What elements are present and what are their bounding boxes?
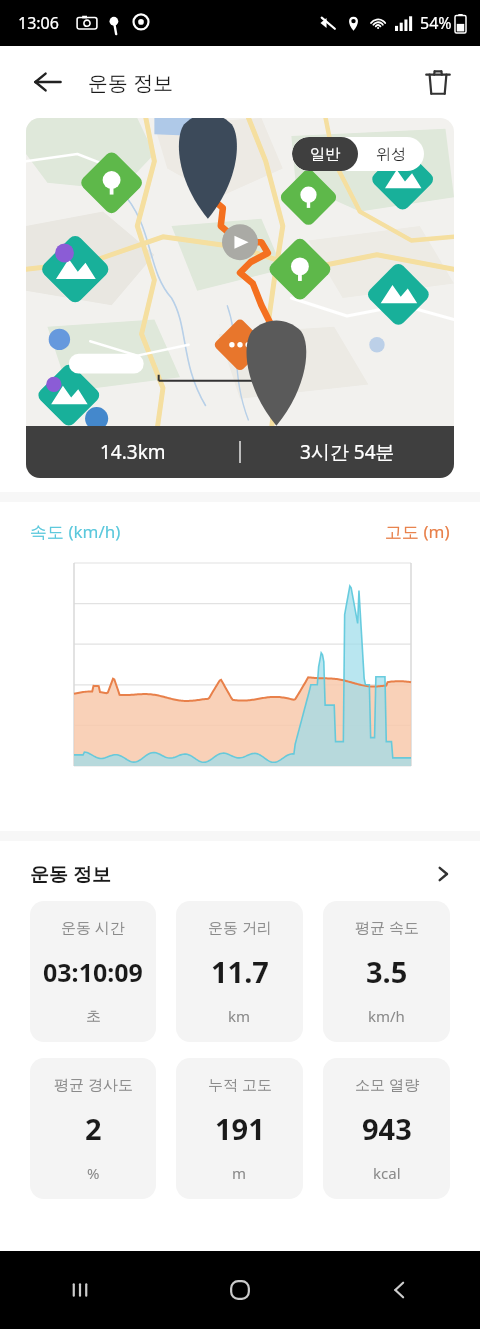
button[interactable]: 일반 xyxy=(26,118,454,478)
staticText: 소모 열량 xyxy=(355,1074,419,1094)
staticText: 일반 xyxy=(310,145,340,164)
staticText: 2 xyxy=(85,1109,102,1148)
button[interactable]: 위성 xyxy=(358,137,424,171)
button[interactable]: 소모 열량 xyxy=(323,1058,450,1199)
button[interactable]: Back xyxy=(320,1251,480,1329)
button[interactable]: 운동 거리 xyxy=(176,901,303,1042)
staticText: km xyxy=(228,1006,251,1026)
staticText: 03:10:09 xyxy=(43,955,143,989)
button[interactable]: 누적 고도 xyxy=(176,1058,303,1199)
button[interactable]: 운동 시간 xyxy=(30,901,156,1042)
staticText: 평균 속도 xyxy=(355,917,419,937)
staticText: m xyxy=(232,1163,247,1183)
staticText: 3.5 xyxy=(366,952,408,991)
button[interactable]: 운동 정보 xyxy=(0,841,480,901)
button[interactable]: 평균 속도 xyxy=(323,901,450,1042)
staticText: 위성 xyxy=(376,145,406,164)
staticText: 54% xyxy=(420,12,452,34)
staticText: kcal xyxy=(373,1163,401,1183)
button[interactable]: 평균 경사도 xyxy=(30,1058,156,1199)
staticText: 13:06 xyxy=(18,12,59,34)
button[interactable]: Recents xyxy=(0,1251,160,1329)
staticText: 운동 거리 xyxy=(208,917,272,937)
staticText: % xyxy=(87,1163,100,1183)
staticText: 평균 경사도 xyxy=(54,1074,133,1094)
staticText: km/h xyxy=(368,1006,405,1026)
staticText: 고도 (m) xyxy=(385,520,450,543)
other: More xyxy=(432,863,454,885)
staticText: 운동 정보 xyxy=(30,861,111,887)
staticText: 운동 시간 xyxy=(61,917,125,937)
staticText: 누적 고도 xyxy=(208,1074,272,1094)
button[interactable]: Back xyxy=(24,58,72,106)
staticText: 11.7 xyxy=(211,952,269,991)
button[interactable]: Delete xyxy=(414,58,462,106)
staticText: 운동 정보 xyxy=(88,69,174,96)
button[interactable]: 일반 xyxy=(292,137,358,171)
button[interactable]: Home xyxy=(160,1251,320,1329)
staticText: 속도 (km/h) xyxy=(30,520,121,543)
staticText: 초 xyxy=(86,1007,101,1026)
staticText: 191 xyxy=(215,1109,265,1148)
staticText: 3시간 54분 xyxy=(300,439,395,465)
staticText: 14.3km xyxy=(100,439,166,465)
staticText: 943 xyxy=(362,1109,412,1148)
